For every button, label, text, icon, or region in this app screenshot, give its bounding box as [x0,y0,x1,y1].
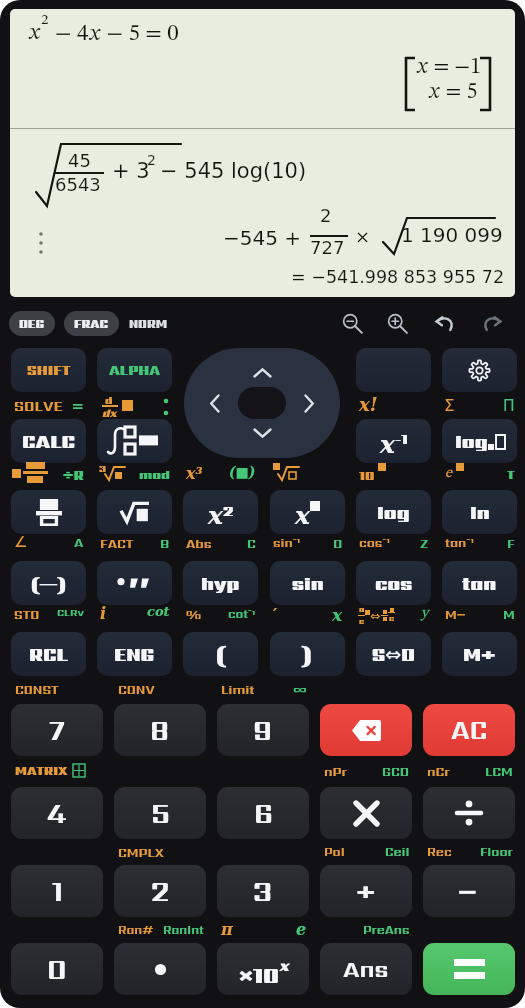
staticText: e [296,920,307,939]
button[interactable]: tan [442,561,517,605]
button[interactable]: log base [442,419,517,463]
staticText: Ceil [385,843,410,860]
button[interactable]: 4 [11,787,103,839]
button[interactable]: M+ [442,632,517,676]
button[interactable]: SHIFT [11,348,86,392]
staticText: ( [216,639,225,670]
staticText: x [332,605,343,625]
button[interactable]: x inverse [356,419,431,463]
staticText: π [221,920,233,939]
staticText: ENG [114,641,155,668]
button[interactable]: 0 [11,943,103,995]
staticText: (■) [229,464,256,480]
button[interactable]: 8 [114,704,206,756]
button[interactable]: 2 [114,865,206,917]
button[interactable]: ) [270,632,345,676]
staticText: DEG [19,315,45,332]
staticText: nCr [427,762,450,780]
staticText: log [455,428,488,455]
button[interactable]: ENG [97,632,172,676]
staticText: − 4𝑥 − 5 = 0 [55,22,179,45]
button[interactable]: FRAC [64,311,119,336]
staticText: 0 [47,950,67,989]
button[interactable]: Settings [442,348,517,392]
button[interactable]: 1 [11,865,103,917]
staticText: 5 [151,794,170,833]
button[interactable]: cos [356,561,431,605]
button[interactable]: ALPHA [97,348,172,392]
staticText: cos⁻¹ [359,534,390,552]
button[interactable]: Redo [479,310,505,336]
button[interactable]: S⇔D [356,632,431,676]
button[interactable]: Square root [97,490,172,534]
staticText: B [160,534,170,552]
staticText: ∞ [293,680,307,700]
staticText: nPr [324,762,347,780]
staticText: + 3 [112,159,150,183]
staticText: 7 [49,711,65,750]
button[interactable]: 3 [217,865,309,917]
staticText: Rec [427,843,452,860]
button[interactable]: AC [423,704,515,756]
button[interactable]: Integral [97,419,172,463]
button[interactable]: Multiply [320,787,412,839]
button[interactable]: Fraction [11,490,86,534]
button[interactable]: x squared [183,490,258,534]
button[interactable]: DEG [9,311,55,336]
staticText: 𝑥 = 5 [428,81,478,103]
button[interactable]: ln [442,490,517,534]
button[interactable]: − [423,865,515,917]
staticText: 2 [147,152,156,168]
staticText: Pol [324,843,345,860]
button[interactable]: RCL [11,632,86,676]
button[interactable]: 7 [11,704,103,756]
staticText: T [507,466,515,483]
button[interactable]: Zoom in [384,310,410,336]
staticText: sin⁻¹ [273,534,301,552]
staticText: × [355,226,371,247]
button[interactable]: log [356,490,431,534]
button[interactable]: sin [270,561,345,605]
staticText: 1 190 099 [401,223,503,246]
staticText: 1 [52,872,63,911]
button[interactable]: Ans [320,943,412,995]
staticText: ′ [273,605,278,624]
button[interactable]: 9 [217,704,309,756]
button[interactable]: + [320,865,412,917]
staticText: 10 [359,466,375,484]
staticText: Π [503,394,515,416]
button[interactable]: Equals [423,943,515,995]
staticText: FACT [100,534,134,552]
staticText: % [186,605,202,623]
button[interactable]: Decimal point [114,943,206,995]
button[interactable]: hyp [183,561,258,605]
staticText: e [445,466,452,481]
button[interactable]: Divide [423,787,515,839]
button[interactable]: Menu [356,348,431,392]
staticText: 6 [254,794,273,833]
staticText: 2 [151,872,170,911]
button[interactable]: x to the power [270,490,345,534]
staticText: PreAns [363,921,410,938]
button[interactable]: Delete [320,704,412,756]
button[interactable]: ( [183,632,258,676]
button[interactable]: Direction pad [184,348,340,458]
button[interactable]: Degrees minutes seconds [97,561,172,605]
staticText: d [105,392,113,407]
staticText: c [389,613,395,624]
staticText: FRAC [74,315,109,332]
staticText: mod [139,465,170,483]
button[interactable]: Times ten to the power x [217,943,309,995]
button[interactable]: Zoom out [339,310,365,336]
staticText: −545 + [223,226,302,249]
button[interactable]: CALC [11,419,86,463]
staticText: 𝑥 [28,21,41,44]
staticText: hyp [201,570,240,597]
button[interactable]: (—) [11,561,86,605]
staticText: CONST [15,680,59,698]
button[interactable]: Undo [432,310,458,336]
staticText: RCL [29,641,68,668]
button[interactable]: 5 [114,787,206,839]
button[interactable]: 6 [217,787,309,839]
staticText: 2 [41,13,49,28]
